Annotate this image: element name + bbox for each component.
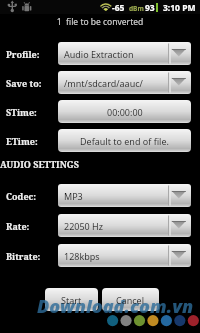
staticText: Save to: [6,77,42,89]
staticText: Codec: [6,190,37,202]
staticText: /mnt/sdcard/aauc/ [64,77,143,89]
staticText: dBm [129,4,144,13]
staticText: STime: [6,106,37,118]
button[interactable]: 00:00:00 [58,100,191,123]
button[interactable]: Audio Extraction [58,42,191,65]
button[interactable]: Start [45,288,98,311]
button[interactable]: 22050 Hz [58,214,191,237]
staticText: -65 [112,2,125,14]
staticText: 128kbps [64,250,100,262]
staticText: 00:00:00 [107,106,143,118]
staticText: Profile: [6,48,40,60]
button[interactable]: /mnt/sdcard/aauc/ [58,71,191,94]
button[interactable] [102,288,159,311]
staticText: 22050 Hz [64,220,103,232]
staticText: Download.com.vn [37,294,194,319]
staticText: Start [61,294,82,306]
button[interactable]: Cancel [102,288,159,311]
staticText: Cancel [116,294,145,306]
staticText: MP3 [64,190,83,202]
staticText: Rate: [6,220,30,232]
staticText: Bitrate: [6,250,41,262]
button[interactable]: 128kbps [58,244,191,267]
staticText: 93 [145,2,155,14]
button[interactable] [45,288,98,311]
staticText: ETime: [6,135,38,147]
button[interactable]: Default to end of file. [58,129,191,152]
staticText: 3:10 PM [163,2,196,14]
staticText: Default to end of file. [80,135,169,147]
staticText: AUDIO SETTINGS [0,158,79,170]
staticText: 1 file to be converted [0,16,200,28]
button[interactable]: MP3 [58,184,191,207]
staticText: Audio Extraction [64,48,134,60]
